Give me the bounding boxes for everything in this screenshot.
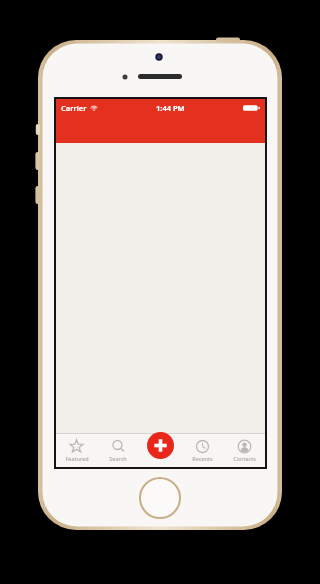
staticText: Search xyxy=(109,455,127,462)
button[interactable]: Featured xyxy=(56,434,97,467)
staticText: 1:44 PM xyxy=(156,103,185,113)
staticText: Recents xyxy=(192,455,213,462)
staticText: Featured xyxy=(65,455,89,462)
staticText: Contacts xyxy=(233,455,256,462)
button[interactable]: Contacts xyxy=(223,434,265,467)
button[interactable]: Search xyxy=(97,434,139,467)
staticText: Carrier xyxy=(61,103,87,113)
button[interactable]: Recents xyxy=(181,434,223,467)
button[interactable]: Add xyxy=(147,432,174,459)
button[interactable]: Add xyxy=(139,434,181,467)
